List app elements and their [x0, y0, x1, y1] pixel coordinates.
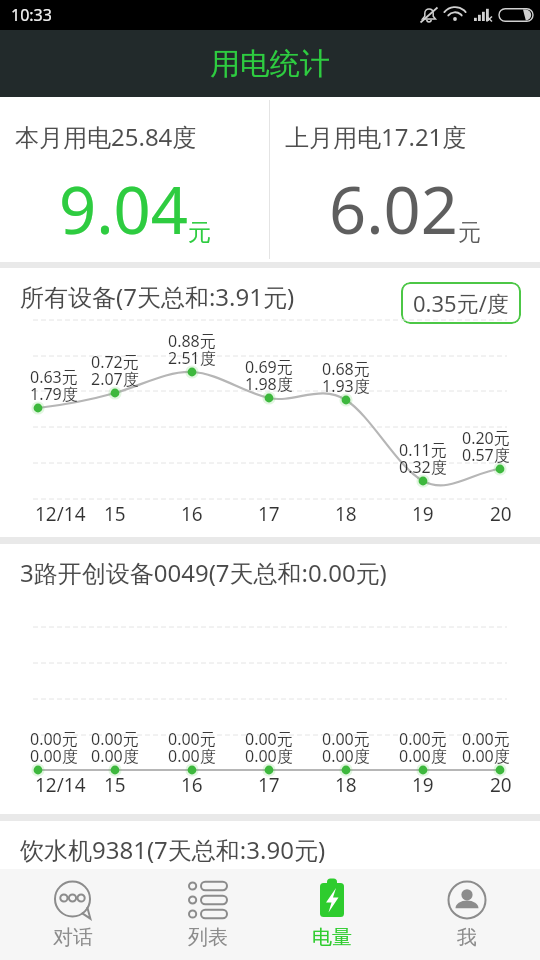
staticText: 列表 [188, 925, 228, 950]
staticText: 6.02 [329, 165, 458, 254]
staticText: 9.04 [59, 165, 188, 254]
staticText: 19 [412, 501, 434, 527]
button[interactable]: 所有设备(7天总和:3.91元) [0, 268, 540, 537]
staticText: 0.00度 [91, 745, 139, 767]
staticText: 20 [490, 501, 512, 527]
staticText: 18 [335, 772, 357, 798]
staticText: 0.00元 [322, 728, 370, 750]
button[interactable]: 本月用电25.84度 [0, 97, 269, 262]
button[interactable]: List [160, 878, 256, 960]
staticText: 0.88元 [168, 330, 216, 352]
staticText: 0.63元 [30, 366, 78, 388]
staticText: 18 [335, 501, 357, 527]
button[interactable]: Profile [419, 878, 515, 960]
button[interactable]: 饮水机9381(7天总和:3.90元) [0, 821, 540, 869]
staticText: 0.00元 [462, 728, 510, 750]
staticText: 0.00度 [322, 745, 370, 767]
staticText: 16 [181, 772, 203, 798]
staticText: 0.68元 [322, 358, 370, 380]
staticText: 0.57度 [462, 444, 510, 466]
button[interactable]: 0.35元/度 [413, 288, 509, 318]
staticText: 0.00度 [462, 745, 510, 767]
staticText: 15 [104, 501, 126, 527]
staticText: 饮水机9381(7天总和:3.90元) [20, 833, 326, 866]
staticText: 0.00元 [30, 728, 78, 750]
button[interactable]: 3路开创设备0049(7天总和:0.00元) [0, 544, 540, 814]
staticText: 0.00元 [399, 728, 447, 750]
staticText: 20 [490, 772, 512, 798]
staticText: 0.72元 [91, 351, 139, 373]
staticText: 15 [104, 772, 126, 798]
staticText: 对话 [53, 925, 93, 950]
staticText: 19 [412, 772, 434, 798]
staticText: 所有设备(7天总和:3.91元) [20, 280, 295, 313]
staticText: 0.00度 [245, 745, 293, 767]
button[interactable]: 上月用电17.21度 [270, 97, 540, 262]
staticText: 用电统计 [210, 45, 330, 83]
staticText: 10:33 [11, 4, 52, 26]
staticText: 0.69元 [245, 356, 293, 378]
staticText: 2.07度 [91, 368, 139, 390]
staticText: 3路开创设备0049(7天总和:0.00元) [20, 556, 387, 589]
staticText: 上月用电17.21度 [285, 120, 467, 153]
staticText: 电量 [312, 925, 352, 950]
staticText: 0.35元/度 [413, 288, 509, 318]
staticText: 16 [181, 501, 203, 527]
staticText: 0.00元 [91, 728, 139, 750]
staticText: 17 [258, 501, 280, 527]
staticText: 本月用电25.84度 [15, 120, 197, 153]
staticText: 0.20元 [462, 427, 510, 449]
staticText: 1.79度 [30, 383, 78, 405]
staticText: 0.11元 [399, 439, 447, 461]
staticText: 17 [258, 772, 280, 798]
staticText: 1.98度 [245, 373, 293, 395]
staticText: 元 [188, 218, 211, 247]
staticText: 0.00度 [30, 745, 78, 767]
staticText: 0.32度 [399, 456, 447, 478]
staticText: 我 [457, 925, 477, 950]
button[interactable]: Power [284, 878, 380, 960]
staticText: 1.93度 [322, 375, 370, 397]
staticText: 0.00元 [245, 728, 293, 750]
staticText: 0.00元 [168, 728, 216, 750]
staticText: 0.00度 [399, 745, 447, 767]
staticText: 12/14 [35, 772, 86, 798]
staticText: 12/14 [35, 501, 86, 527]
button[interactable]: Chat [25, 878, 121, 960]
staticText: 0.00度 [168, 745, 216, 767]
staticText: 元 [458, 218, 481, 247]
staticText: 2.51度 [168, 347, 216, 369]
